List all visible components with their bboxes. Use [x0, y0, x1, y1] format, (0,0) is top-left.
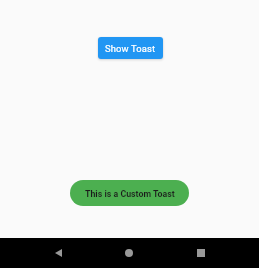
button[interactable]: Show Toast — [98, 37, 163, 59]
button[interactable]: Recent apps — [186, 238, 216, 268]
button[interactable]: Back — [43, 238, 73, 268]
staticText: This is a Custom Toast — [85, 189, 175, 199]
button[interactable]: Home — [114, 238, 144, 268]
staticText: Show Toast — [105, 43, 156, 54]
